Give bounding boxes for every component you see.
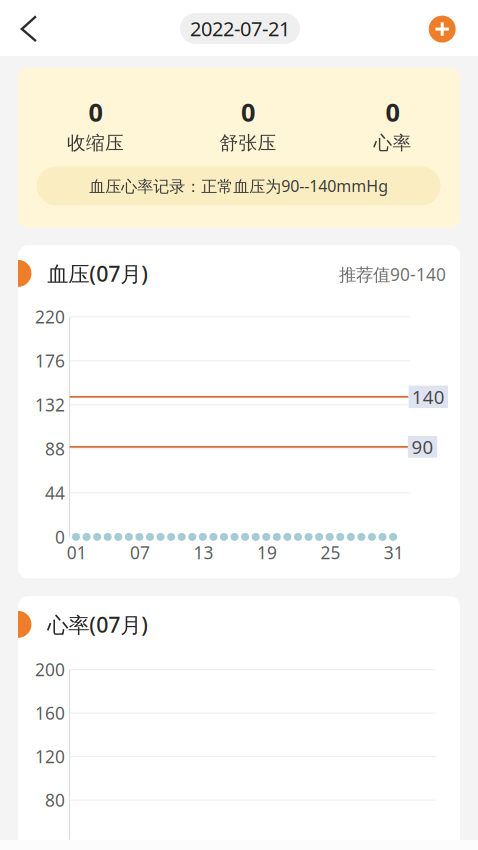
staticText: 舒张压 [219,131,276,154]
staticText: 80 [45,789,65,812]
staticText: 收缩压 [67,131,124,154]
staticText: 31 [384,541,404,564]
staticText: 140 [412,384,445,409]
staticText: 0 [88,95,102,129]
staticText: 132 [35,393,65,416]
button[interactable]: Back [6,5,52,53]
staticText: 2022-07-21 [190,15,290,42]
staticText: 200 [35,658,65,681]
staticText: 88 [45,437,65,460]
staticText: 心率(07月) [47,610,148,638]
staticText: 0 [241,95,255,129]
staticText: 176 [35,349,65,372]
staticText: 44 [45,481,65,504]
staticText: 25 [320,541,340,564]
staticText: 推荐值90-140 [339,263,446,286]
button[interactable]: 2022-07-21 [180,13,300,44]
staticText: 血压心率记录：正常血压为90--140mmHg [89,175,388,196]
button[interactable]: Add [420,7,464,51]
staticText: 心率 [373,131,411,154]
staticText: 07 [130,541,150,564]
staticText: 120 [35,745,65,768]
staticText: 0 [385,95,399,129]
staticText: 01 [67,541,87,564]
staticText: 13 [193,541,213,564]
staticText: 19 [257,541,277,564]
staticText: 160 [35,702,65,725]
staticText: 血压(07月) [47,259,148,287]
staticText: 90 [411,434,433,459]
staticText: 0 [55,525,65,548]
staticText: 220 [35,305,65,328]
